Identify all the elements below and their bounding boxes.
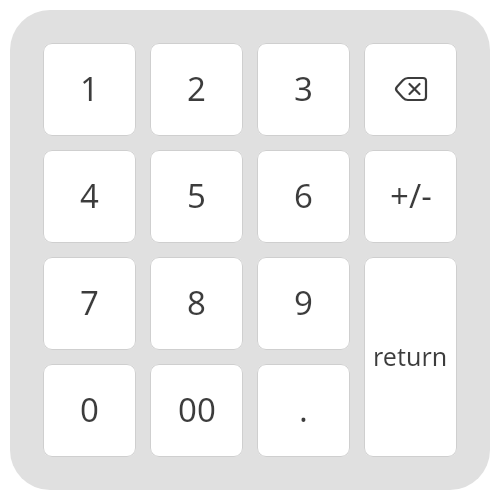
staticText: return [373,339,448,373]
staticText: 1 [80,66,99,111]
button[interactable]: +/- [364,150,457,243]
staticText: 7 [80,280,99,325]
staticText: 8 [187,280,206,325]
button[interactable]: 4 [43,150,136,243]
staticText: 00 [178,387,216,432]
staticText: . [299,387,308,432]
button[interactable]: 1 [43,43,136,136]
button[interactable]: 2 [150,43,243,136]
staticText: 3 [294,66,313,111]
staticText: 0 [80,387,99,432]
button[interactable]: 9 [257,257,350,350]
staticText: 9 [294,280,313,325]
button[interactable]: . [257,364,350,457]
button[interactable]: 5 [150,150,243,243]
staticText: 5 [187,173,206,218]
button[interactable] [364,43,457,136]
button[interactable]: 8 [150,257,243,350]
staticText: 6 [294,173,313,218]
button[interactable]: 00 [150,364,243,457]
staticText: 4 [80,173,99,218]
staticText: +/- [390,173,432,218]
button[interactable]: 3 [257,43,350,136]
button[interactable]: return [364,257,457,457]
button[interactable]: 6 [257,150,350,243]
button[interactable]: 7 [43,257,136,350]
staticText: 2 [187,66,206,111]
button[interactable]: 0 [43,364,136,457]
